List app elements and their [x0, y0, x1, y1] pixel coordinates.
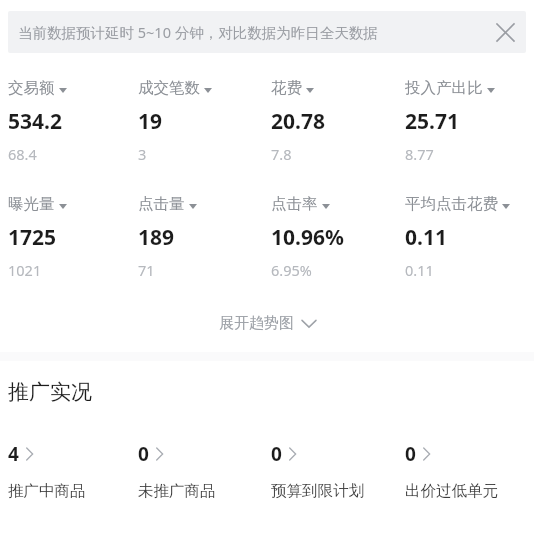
button[interactable]: 当前数据预计延时 5~10 分钟，对比数据为昨日全天数据 — [8, 11, 526, 53]
staticText: 未推广商品 — [138, 481, 216, 501]
staticText: 0 — [271, 441, 282, 467]
button[interactable]: 花费 — [271, 78, 400, 164]
staticText: 预算到限计划 — [271, 481, 364, 501]
button[interactable]: 曝光量 — [8, 194, 133, 280]
staticText: 6.95% — [271, 260, 312, 280]
button[interactable]: 交易额 — [8, 78, 133, 164]
staticText: 68.4 — [8, 144, 37, 164]
staticText: 1725 — [8, 223, 57, 252]
staticText: 534.2 — [8, 107, 62, 136]
staticText: 4 — [8, 441, 19, 467]
button[interactable]: 4 — [8, 441, 133, 501]
staticText: 71 — [138, 260, 155, 280]
staticText: 交易额 — [8, 78, 55, 98]
staticText: 出价过低单元 — [405, 481, 498, 501]
staticText: 189 — [138, 223, 175, 252]
staticText: 10.96% — [271, 223, 344, 252]
button[interactable]: 0 — [138, 441, 266, 501]
staticText: 点击量 — [138, 194, 185, 214]
button[interactable]: Close notice — [484, 11, 526, 53]
staticText: 展开趋势图 — [219, 314, 294, 333]
button[interactable]: 点击率 — [271, 194, 400, 280]
staticText: 花费 — [271, 78, 302, 98]
staticText: 3 — [138, 144, 147, 164]
button[interactable]: 展开趋势图 — [0, 306, 534, 340]
staticText: 推广实况 — [8, 379, 92, 405]
button[interactable]: 0 — [271, 441, 400, 501]
staticText: 20.78 — [271, 107, 325, 136]
staticText: 成交笔数 — [138, 78, 200, 98]
button[interactable]: 平均点击花费 — [405, 194, 534, 280]
staticText: 0.11 — [405, 260, 434, 280]
button[interactable]: 点击量 — [138, 194, 266, 280]
staticText: 当前数据预计延时 5~10 分钟，对比数据为昨日全天数据 — [18, 22, 484, 42]
staticText: 0 — [405, 441, 416, 467]
staticText: 推广中商品 — [8, 481, 86, 501]
staticText: 平均点击花费 — [405, 194, 498, 214]
staticText: 19 — [138, 107, 163, 136]
staticText: 投入产出比 — [405, 78, 483, 98]
staticText: 1021 — [8, 260, 42, 280]
staticText: 25.71 — [405, 107, 459, 136]
staticText: 点击率 — [271, 194, 318, 214]
staticText: 7.8 — [271, 144, 292, 164]
staticText: 8.77 — [405, 144, 434, 164]
button[interactable]: 0 — [405, 441, 534, 501]
button[interactable]: 成交笔数 — [138, 78, 266, 164]
staticText: 0 — [138, 441, 149, 467]
staticText: 0.11 — [405, 223, 447, 252]
button[interactable]: 投入产出比 — [405, 78, 534, 164]
staticText: 曝光量 — [8, 194, 55, 214]
